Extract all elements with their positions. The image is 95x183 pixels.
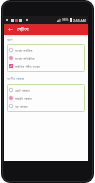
staticText: ছোট আকার — [15, 88, 30, 93]
staticText: বড় আকার — [15, 104, 28, 109]
button[interactable]: সর্বাধিক পঠিত সংবাদ — [9, 62, 83, 70]
button[interactable]: সংবাদ সর্বাধিক — [9, 46, 83, 54]
staticText: 2:55 AM — [73, 18, 86, 23]
button[interactable]: মাঝারি আকার — [9, 94, 83, 102]
button[interactable]: সংবাদ সাম্প্রতিক — [9, 54, 83, 62]
staticText: 98% — [62, 18, 69, 22]
button[interactable]: বড় আকার — [9, 102, 83, 110]
staticText: সর্বাধিক পঠিত সংবাদ — [15, 64, 40, 69]
staticText: ফন্টের আকার — [7, 76, 25, 82]
staticText: সংবাদ সাম্প্রতিক — [15, 56, 35, 61]
staticText: সংবাদ সর্বাধিক — [15, 48, 33, 53]
staticText: মাঝারি আকার — [15, 96, 32, 101]
staticText: ধরণ — [7, 38, 13, 42]
staticText: সেটিংস — [17, 27, 29, 32]
button[interactable]: Back — [6, 25, 15, 34]
button[interactable]: ছোট আকার — [9, 86, 83, 94]
